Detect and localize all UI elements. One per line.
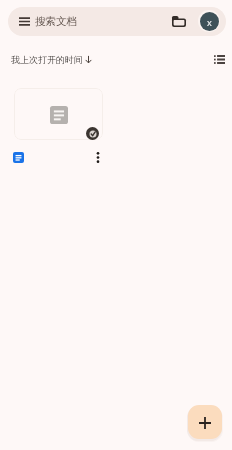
staticText: x [207, 16, 212, 28]
button[interactable]: Untitled document [13, 87, 104, 165]
button[interactable]: 搜索文档 [8, 7, 226, 36]
staticText: 我上次打开的时间 [11, 54, 83, 65]
button[interactable]: 我上次打开的时间 [11, 54, 92, 65]
button[interactable]: Folders [167, 10, 191, 34]
button[interactable]: List view [208, 48, 230, 70]
button[interactable]: Account [198, 10, 220, 32]
button[interactable]: More options [90, 151, 106, 163]
staticText: 搜索文档 [35, 15, 77, 28]
button[interactable]: Create new document [188, 405, 222, 439]
